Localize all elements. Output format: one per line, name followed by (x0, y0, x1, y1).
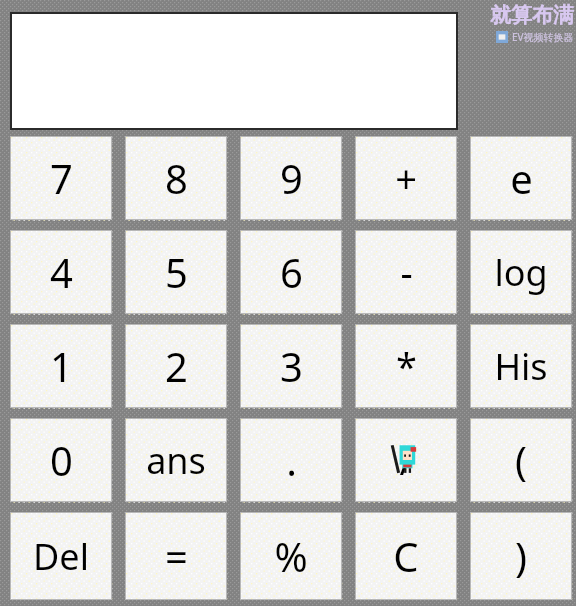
staticText: 7 (50, 151, 73, 205)
staticText: e (510, 151, 533, 205)
button[interactable]: ) (470, 512, 572, 600)
staticText: = (165, 529, 188, 583)
staticText: 8 (165, 151, 188, 205)
staticText: C (393, 529, 419, 583)
staticText: EV视频转换器 (512, 30, 574, 44)
button[interactable]: ans (125, 418, 227, 502)
button[interactable]: % (240, 512, 342, 600)
staticText: . (286, 433, 297, 487)
button[interactable]: 3 (240, 324, 342, 408)
button[interactable]: - (355, 230, 457, 314)
button[interactable]: 4 (10, 230, 112, 314)
button[interactable]: His (470, 324, 572, 408)
staticText: Del (33, 532, 89, 581)
staticText: - (400, 246, 413, 298)
staticText: ) (515, 529, 527, 583)
button[interactable]: Del (10, 512, 112, 600)
staticText: ans (146, 436, 206, 485)
staticText: His (494, 342, 548, 391)
button[interactable]: C (355, 512, 457, 600)
button[interactable]: e (470, 136, 572, 220)
staticText: 5 (165, 245, 188, 299)
button[interactable]: * (355, 324, 457, 408)
button[interactable]: 7 (10, 136, 112, 220)
staticText: % (274, 529, 308, 583)
staticText: 3 (280, 339, 303, 393)
staticText: / (399, 434, 414, 486)
button[interactable]: / (355, 418, 457, 502)
button[interactable]: 1 (10, 324, 112, 408)
button[interactable]: = (125, 512, 227, 600)
staticText: 就算布满 (490, 2, 574, 28)
button[interactable]: 0 (10, 418, 112, 502)
button[interactable]: 6 (240, 230, 342, 314)
button[interactable] (10, 12, 458, 130)
button[interactable]: 5 (125, 230, 227, 314)
button[interactable]: 8 (125, 136, 227, 220)
staticText: 1 (50, 339, 73, 393)
staticText: 6 (280, 245, 303, 299)
staticText: 2 (165, 339, 188, 393)
staticText: 4 (50, 245, 73, 299)
staticText: + (395, 152, 417, 204)
staticText: ( (515, 433, 527, 487)
staticText: log (494, 248, 548, 297)
staticText: * (396, 340, 417, 392)
button[interactable]: 2 (125, 324, 227, 408)
button[interactable]: 9 (240, 136, 342, 220)
button[interactable]: . (240, 418, 342, 502)
button[interactable]: log (470, 230, 572, 314)
button[interactable]: ( (470, 418, 572, 502)
button[interactable]: + (355, 136, 457, 220)
staticText: 0 (50, 433, 73, 487)
staticText: 9 (280, 151, 303, 205)
